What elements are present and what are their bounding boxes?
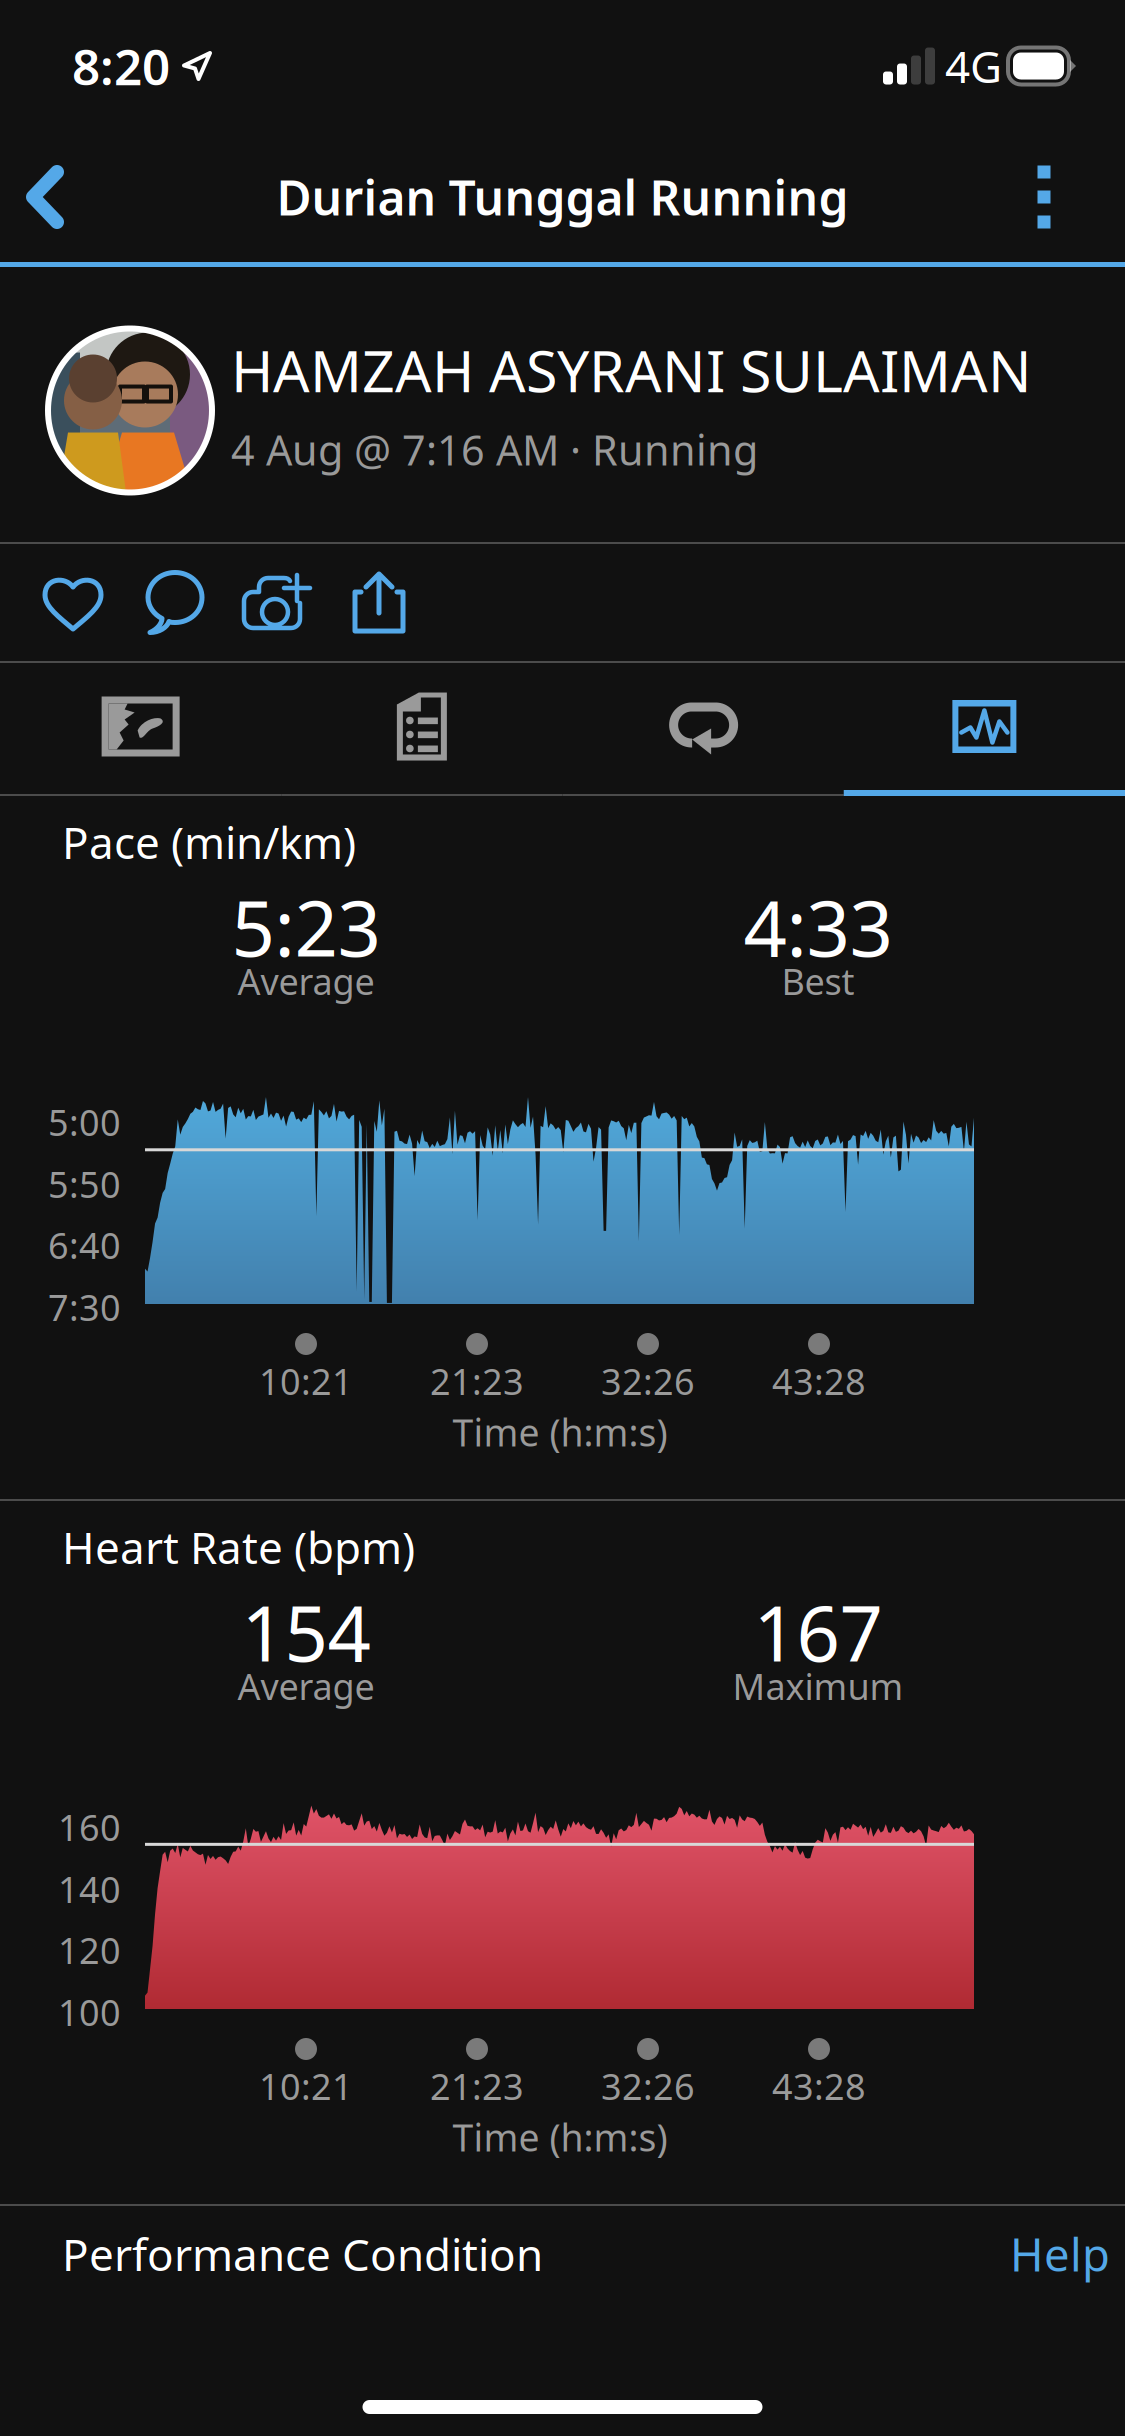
staticText: Performance Condition (62, 2225, 543, 2283)
button[interactable]: Comment (124, 544, 226, 661)
staticText: 10:21 (259, 2062, 353, 2110)
staticText: 5:23 (231, 876, 380, 977)
staticText: Time (h:m:s) (452, 1407, 667, 1457)
staticText: 140 (58, 1865, 121, 1913)
staticText: 21:23 (430, 1357, 524, 1405)
staticText: Average (237, 1662, 374, 1710)
staticText: 32:26 (601, 2062, 695, 2110)
staticText: 5:00 (48, 1098, 121, 1146)
staticText: 7:30 (48, 1283, 121, 1331)
staticText: Pace (min/km) (62, 813, 356, 871)
staticText: Time (h:m:s) (452, 2112, 667, 2162)
staticText: 120 (58, 1926, 121, 1974)
staticText: Help (1010, 2224, 1110, 2284)
staticText: 167 (753, 1581, 882, 1682)
staticText: 6:40 (48, 1221, 121, 1269)
button[interactable]: Map (0, 663, 281, 790)
staticText: 154 (241, 1581, 370, 1682)
staticText: Durian Tunggal Running (276, 165, 848, 229)
staticText: Heart Rate (bpm) (62, 1518, 415, 1576)
staticText: 21:23 (430, 2062, 524, 2110)
staticText: Best (781, 957, 854, 1005)
staticText: 4 Aug @ 7:16 AM · Running (231, 422, 758, 477)
button[interactable]: Back (0, 132, 104, 262)
staticText: 32:26 (601, 1357, 695, 1405)
staticText: 4:33 (743, 876, 892, 977)
staticText: 100 (58, 1988, 121, 2036)
button[interactable]: Details (281, 663, 562, 790)
staticText: HAMZAH ASYRANI SULAIMAN (231, 332, 1032, 408)
button[interactable]: Charts (844, 663, 1125, 790)
button[interactable]: Laps (562, 663, 844, 790)
staticText: 43:28 (772, 2062, 866, 2110)
staticText: 160 (58, 1803, 121, 1851)
staticText: 10:21 (259, 1357, 353, 1405)
staticText: Maximum (732, 1662, 903, 1710)
button[interactable]: Like (22, 544, 124, 661)
staticText: Average (237, 957, 374, 1005)
button[interactable]: Help (1005, 2221, 1115, 2287)
button[interactable]: Add photo (226, 544, 328, 661)
staticText: 5:50 (48, 1160, 121, 1208)
staticText: 43:28 (772, 1357, 866, 1405)
button[interactable]: More options (999, 132, 1125, 262)
staticText: 4G (945, 37, 1002, 95)
button[interactable]: Share (328, 544, 430, 661)
staticText: 8:20 (72, 33, 170, 99)
